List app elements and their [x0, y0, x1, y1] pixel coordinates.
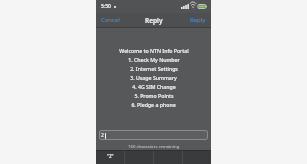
staticText: 4. 4G SIM Change	[132, 83, 176, 90]
other: Keyboard	[96, 150, 211, 164]
staticText: 5:50	[101, 3, 111, 10]
staticText: 160 characters remaining	[128, 143, 180, 149]
button[interactable]: Reply	[185, 14, 211, 26]
staticText: "2"	[107, 153, 114, 159]
button[interactable]: 2	[99, 130, 208, 140]
staticText: 3. Usage Summary	[130, 74, 177, 81]
staticText: Reply	[190, 16, 206, 24]
staticText: Cancel	[101, 16, 120, 24]
staticText: 2. Internet Settings	[130, 65, 178, 72]
staticText: Reply	[145, 16, 163, 25]
staticText: 2	[101, 132, 104, 139]
button[interactable]: Key 1	[96, 151, 124, 164]
button[interactable]: Cancel	[96, 14, 125, 26]
staticText: 5. Promo Points	[134, 92, 174, 99]
staticText: 6. Pledge a phone	[131, 101, 176, 108]
staticText: 1. Check My Number	[128, 56, 180, 63]
staticText: Welcome to NTN Info Portal	[119, 47, 189, 54]
